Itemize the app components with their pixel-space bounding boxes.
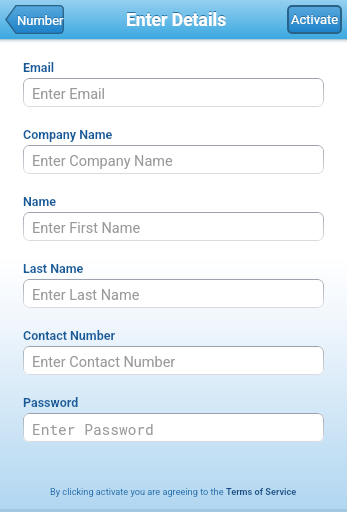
staticText: Activate <box>291 11 339 26</box>
staticText: Enter Contact Number <box>32 354 176 371</box>
staticText: Last Name <box>23 261 84 276</box>
staticText: Password <box>23 395 79 410</box>
button[interactable]: Enter Last Name <box>23 279 324 308</box>
staticText: Enter First Name <box>32 220 141 237</box>
staticText: Contact Number <box>23 328 116 343</box>
button[interactable]: Enter First Name <box>23 212 324 241</box>
staticText: Company Name <box>23 127 113 142</box>
staticText: Enter Email <box>32 86 106 103</box>
button[interactable]: Enter Email <box>23 78 324 107</box>
staticText: Activate <box>291 12 339 27</box>
staticText: Number <box>17 12 64 27</box>
staticText: Enter Company Name <box>32 153 173 170</box>
button[interactable]: Enter Password <box>23 413 324 442</box>
button[interactable]: Terms of Service <box>226 486 297 497</box>
staticText: By clicking activate you are agreeing to… <box>50 486 226 497</box>
staticText: Enter Last Name <box>32 287 140 304</box>
staticText: Email <box>23 60 55 75</box>
button[interactable]: Number <box>5 5 64 34</box>
staticText: Enter Password <box>32 420 154 439</box>
staticText: Number <box>17 13 64 28</box>
button[interactable]: Enter Contact Number <box>23 346 324 375</box>
button[interactable]: Activate <box>287 5 342 34</box>
staticText: Enter Details <box>126 10 227 31</box>
staticText: Name <box>23 194 57 209</box>
staticText: Enter Details <box>126 9 227 30</box>
button[interactable]: Enter Company Name <box>23 145 324 174</box>
